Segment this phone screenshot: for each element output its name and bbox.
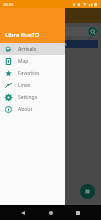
button[interactable]: Recents [73,208,83,218]
staticText: About [18,106,33,113]
button[interactable]: Arrivals [0,43,65,55]
staticText: Libre BusTO [5,31,40,39]
staticText: Settings [18,94,38,101]
button[interactable]: Add favorite [80,184,95,199]
staticText: SHOW ARRIVALS [35,42,67,47]
staticText: 08:09 [3,2,14,7]
button[interactable]: Search [88,27,97,36]
button[interactable]: Lines [0,79,65,91]
button[interactable]: Favorites [0,67,65,79]
button[interactable] [4,27,97,36]
button[interactable]: Settings [0,91,65,103]
staticText: Map [18,58,29,65]
button[interactable]: Back [18,208,28,218]
button[interactable]: Home [46,208,56,218]
staticText: Arrivals [18,46,37,53]
button[interactable]: About [0,103,65,115]
staticText: Lines [18,82,31,89]
button[interactable]: Map [0,55,65,67]
staticText: Favorites [18,70,40,77]
button[interactable]: SHOW ARRIVALS [3,40,98,48]
